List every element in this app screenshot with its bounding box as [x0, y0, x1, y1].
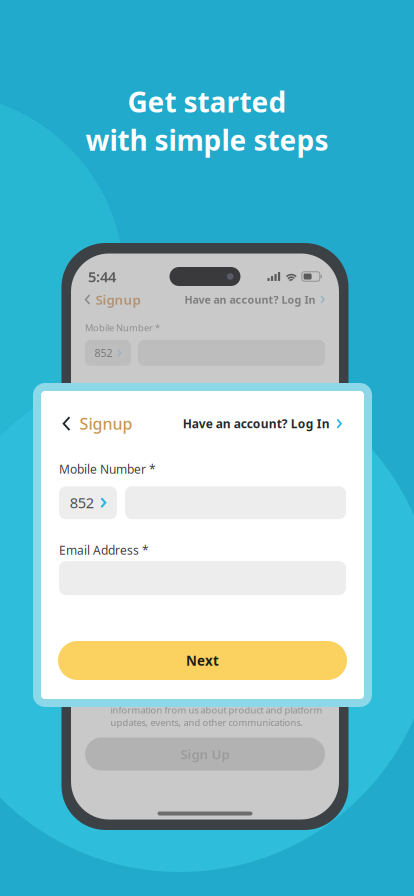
staticText: Next — [186, 652, 219, 669]
staticText: Signup — [79, 413, 132, 434]
staticText: 852 — [70, 493, 94, 512]
button[interactable]: Next — [58, 641, 347, 680]
button[interactable]: 852 — [59, 486, 117, 519]
button[interactable]: Have an account? Log In — [183, 411, 342, 437]
staticText: 852 — [94, 346, 112, 360]
staticText: Signup — [95, 291, 140, 308]
button[interactable]: Signup — [63, 408, 132, 439]
staticText: 5:44 — [88, 267, 116, 286]
staticText: Have an account? Log In — [183, 416, 330, 432]
staticText: Get started — [127, 83, 286, 120]
staticText: Have an account? Log In — [184, 292, 315, 307]
staticText: Mobile Number * — [59, 461, 156, 477]
staticText: Tick this box if you would like to recei… — [110, 691, 322, 728]
staticText: with simple steps — [85, 121, 328, 158]
staticText: Sign Up — [180, 745, 229, 763]
staticText: Email Address * — [59, 542, 149, 558]
staticText: Mobile Number * — [85, 321, 160, 334]
